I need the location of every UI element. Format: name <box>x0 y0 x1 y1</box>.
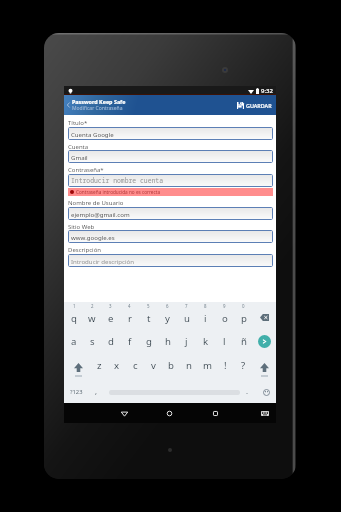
button[interactable]: v <box>144 353 162 377</box>
staticText: Password Keep Safe <box>72 98 126 105</box>
staticText: y <box>165 312 170 325</box>
button[interactable]: s <box>83 329 101 353</box>
staticText: 5 <box>147 303 150 309</box>
staticText: 8 <box>204 303 207 309</box>
button[interactable]: 1 <box>65 302 83 329</box>
staticText: 2 <box>91 303 94 309</box>
button[interactable]: ! <box>216 353 234 377</box>
button[interactable]: Space <box>105 377 244 403</box>
staticText: GUARDAR <box>246 102 272 109</box>
button[interactable]: d <box>101 329 120 353</box>
staticText: Descripción <box>68 246 102 254</box>
staticText: 4 <box>128 303 131 309</box>
button[interactable]: Shift <box>252 353 276 377</box>
button[interactable]: Introducir descripción <box>68 254 273 267</box>
button[interactable]: , <box>87 377 105 403</box>
staticText: , <box>95 386 98 396</box>
button[interactable]: 7 <box>177 302 196 329</box>
staticText: v <box>151 359 156 372</box>
button[interactable]: Back <box>64 95 72 115</box>
staticText: Cuenta <box>68 143 89 151</box>
staticText: w <box>88 312 96 325</box>
staticText: ?123 <box>70 388 83 396</box>
button[interactable]: b <box>162 353 180 377</box>
button[interactable]: 3 <box>101 302 120 329</box>
button[interactable]: n <box>180 353 198 377</box>
button[interactable]: Enter <box>253 329 276 353</box>
staticText: c <box>133 359 138 372</box>
button[interactable]: h <box>158 329 177 353</box>
button[interactable]: Gmail <box>68 150 273 163</box>
button[interactable]: ejemplo@gmail.com <box>68 207 273 220</box>
staticText: Título* <box>68 119 88 127</box>
staticText: Sitio Web <box>68 223 95 231</box>
button[interactable]: l <box>215 329 234 353</box>
button[interactable]: www.google.es <box>68 230 273 243</box>
staticText: e <box>108 312 114 325</box>
button[interactable]: ñ <box>234 329 253 353</box>
button[interactable]: 0 <box>234 302 253 329</box>
button[interactable]: f <box>120 329 139 353</box>
button[interactable]: ?123 <box>65 377 87 403</box>
staticText: u <box>184 312 190 325</box>
staticText: t <box>147 312 151 325</box>
staticText: h <box>165 335 171 348</box>
staticText: k <box>203 335 209 348</box>
button[interactable]: Recents <box>208 403 222 423</box>
staticText: b <box>168 359 174 372</box>
button[interactable]: 4 <box>120 302 139 329</box>
staticText: m <box>203 359 212 372</box>
button[interactable]: j <box>177 329 196 353</box>
button[interactable]: . <box>239 377 256 403</box>
button[interactable]: x <box>108 353 126 377</box>
staticText: n <box>186 359 192 372</box>
button[interactable]: 9 <box>215 302 234 329</box>
staticText: z <box>97 359 102 372</box>
button[interactable]: Hide keyboard <box>258 403 272 423</box>
staticText: i <box>204 312 207 325</box>
staticText: 3 <box>109 303 112 309</box>
staticText: d <box>108 335 114 348</box>
staticText: Introducir nombre cuenta <box>71 176 164 185</box>
staticText: a <box>71 335 77 348</box>
staticText: ! <box>224 359 227 372</box>
button[interactable]: Introducir nombre cuenta <box>68 174 273 187</box>
staticText: Gmail <box>71 153 88 161</box>
staticText: www.google.es <box>71 233 115 241</box>
staticText: Cuenta Google <box>71 130 114 138</box>
staticText: 1 <box>73 303 76 309</box>
button[interactable]: Emoji <box>256 377 277 403</box>
button[interactable]: Cuenta Google <box>68 127 273 140</box>
button[interactable]: GUARDAR <box>237 102 272 109</box>
staticText: 7 <box>185 303 188 309</box>
staticText: g <box>146 335 152 348</box>
staticText: o <box>222 312 228 325</box>
staticText: 9:32 <box>261 87 273 95</box>
button[interactable]: Backspace <box>253 302 276 329</box>
button[interactable]: ? <box>234 353 252 377</box>
button[interactable]: Home <box>162 403 176 423</box>
button[interactable]: m <box>198 353 216 377</box>
staticText: j <box>185 335 188 348</box>
staticText: Modificar Contraseña <box>72 105 123 112</box>
button[interactable]: Shift <box>65 353 90 377</box>
button[interactable]: z <box>90 353 108 377</box>
button[interactable]: c <box>126 353 144 377</box>
button[interactable]: 5 <box>139 302 158 329</box>
staticText: p <box>241 312 247 325</box>
staticText: q <box>71 312 77 325</box>
button[interactable]: g <box>139 329 158 353</box>
button[interactable]: 2 <box>83 302 101 329</box>
staticText: s <box>90 335 95 348</box>
staticText: . <box>246 386 249 396</box>
button[interactable]: Back <box>117 403 131 423</box>
staticText: ? <box>241 359 246 372</box>
button[interactable]: 6 <box>158 302 177 329</box>
staticText: Introducir descripción <box>71 257 135 265</box>
staticText: r <box>128 312 132 325</box>
staticText: x <box>114 359 120 372</box>
button[interactable]: a <box>65 329 83 353</box>
button[interactable]: Back <box>64 95 276 115</box>
button[interactable]: 8 <box>196 302 215 329</box>
button[interactable]: k <box>196 329 215 353</box>
